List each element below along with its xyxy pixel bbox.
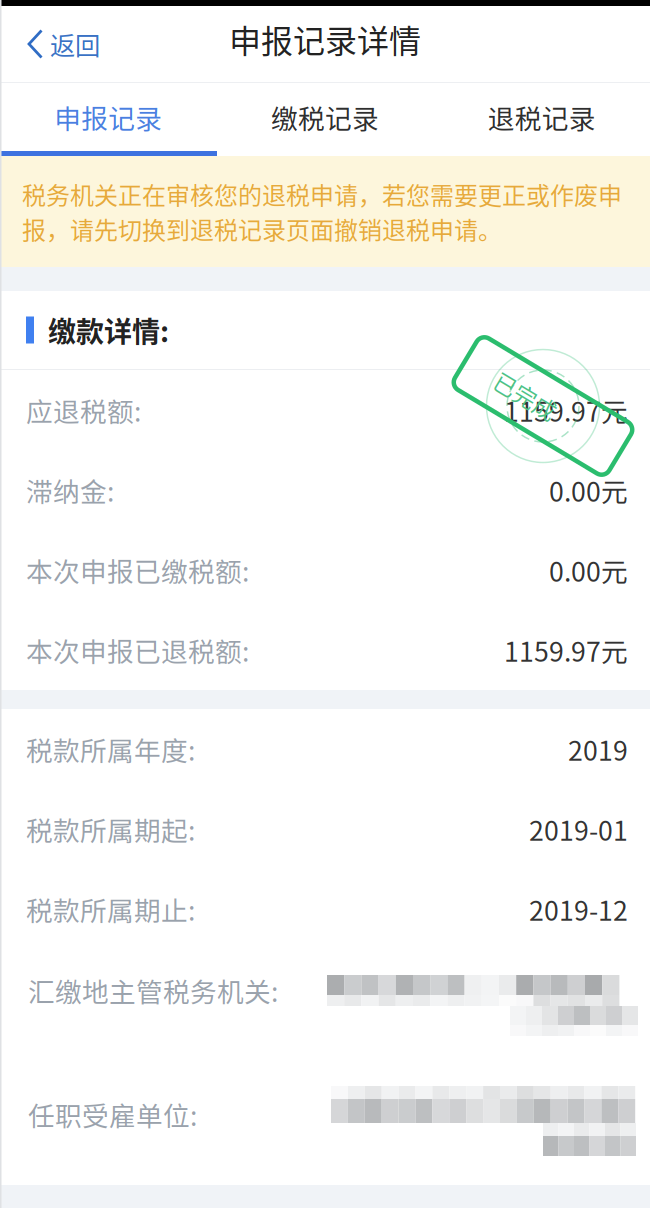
button[interactable]: 退税记录	[433, 83, 650, 151]
staticText: 应退税额:	[26, 391, 141, 429]
staticText: 申报记录详情	[229, 16, 421, 62]
staticText: 缴税记录	[271, 98, 379, 136]
staticText: 0.00元	[549, 551, 628, 589]
button[interactable]: 返回	[0, 16, 113, 72]
staticText: 0.00元	[549, 471, 628, 509]
staticText: 税务机关正在审核您的退税申请，若您需要更正或作废申报，请先切换到退税记录页面撤销…	[22, 177, 622, 246]
staticText: 本次申报已退税额:	[26, 631, 249, 669]
staticText: 退税记录	[488, 98, 596, 136]
staticText: 申报记录	[54, 98, 162, 136]
button[interactable]: 申报记录	[0, 83, 217, 151]
staticText: 返回	[50, 26, 100, 62]
staticText: 滞纳金:	[26, 471, 114, 509]
staticText: 2019	[568, 730, 628, 768]
staticText: 税款所属期止:	[26, 890, 195, 928]
staticText: 2019-12	[529, 890, 628, 928]
staticText: 1159.97元	[504, 391, 628, 429]
staticText: 已完成	[488, 390, 557, 422]
staticText: 1159.97元	[504, 631, 628, 669]
staticText: 本次申报已缴税额:	[26, 551, 249, 589]
staticText: 税款所属期起:	[26, 810, 195, 848]
button[interactable]: 缴税记录	[217, 83, 433, 151]
staticText: 任职受雇单位:	[28, 1095, 197, 1134]
staticText: 税款所属年度:	[26, 730, 195, 768]
staticText: 缴款详情:	[48, 310, 169, 350]
staticText: 2019-01	[529, 810, 628, 848]
staticText: 汇缴地主管税务机关:	[28, 971, 278, 1010]
